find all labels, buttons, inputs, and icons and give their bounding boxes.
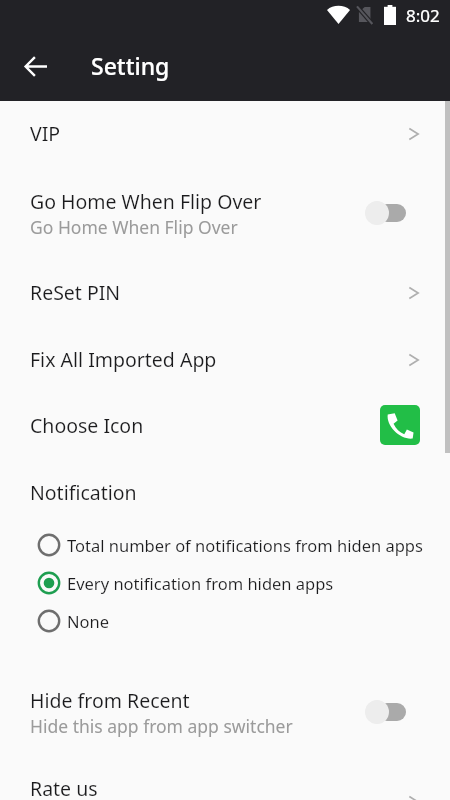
button[interactable]: None (0, 602, 450, 640)
staticText: Setting (91, 50, 170, 81)
button[interactable]: Go Home When Flip Over (0, 175, 450, 251)
button[interactable]: ReSet PIN (0, 264, 450, 320)
staticText: ReSet PIN (30, 279, 121, 306)
staticText: Hide this app from app switcher (30, 714, 293, 738)
button[interactable]: Rate us (0, 760, 450, 800)
button[interactable]: Every notification from hiden apps (0, 564, 450, 602)
button[interactable]: Choose Icon (380, 405, 420, 445)
button[interactable]: Choose Icon (0, 397, 450, 453)
staticText: Hide from Recent (30, 687, 190, 714)
staticText: Choose Icon (30, 412, 144, 439)
staticText: Every notification from hiden apps (67, 572, 334, 594)
staticText: Fix All Imported App (30, 346, 217, 373)
staticText: Total number of notifications from hiden… (67, 534, 423, 556)
staticText: 8:02 (406, 4, 440, 27)
button[interactable]: Total number of notifications from hiden… (0, 526, 450, 564)
staticText: VIP (30, 120, 61, 147)
staticText: None (67, 610, 110, 632)
staticText: Go Home When Flip Over (30, 215, 238, 239)
staticText: Go Home When Flip Over (30, 188, 262, 215)
button[interactable]: Back (13, 43, 59, 89)
button[interactable]: Fix All Imported App (0, 331, 450, 387)
button[interactable]: VIP (0, 105, 450, 161)
button[interactable]: Hide from Recent (0, 674, 450, 750)
staticText: Rate us (30, 775, 98, 800)
staticText: Notification (30, 479, 137, 506)
